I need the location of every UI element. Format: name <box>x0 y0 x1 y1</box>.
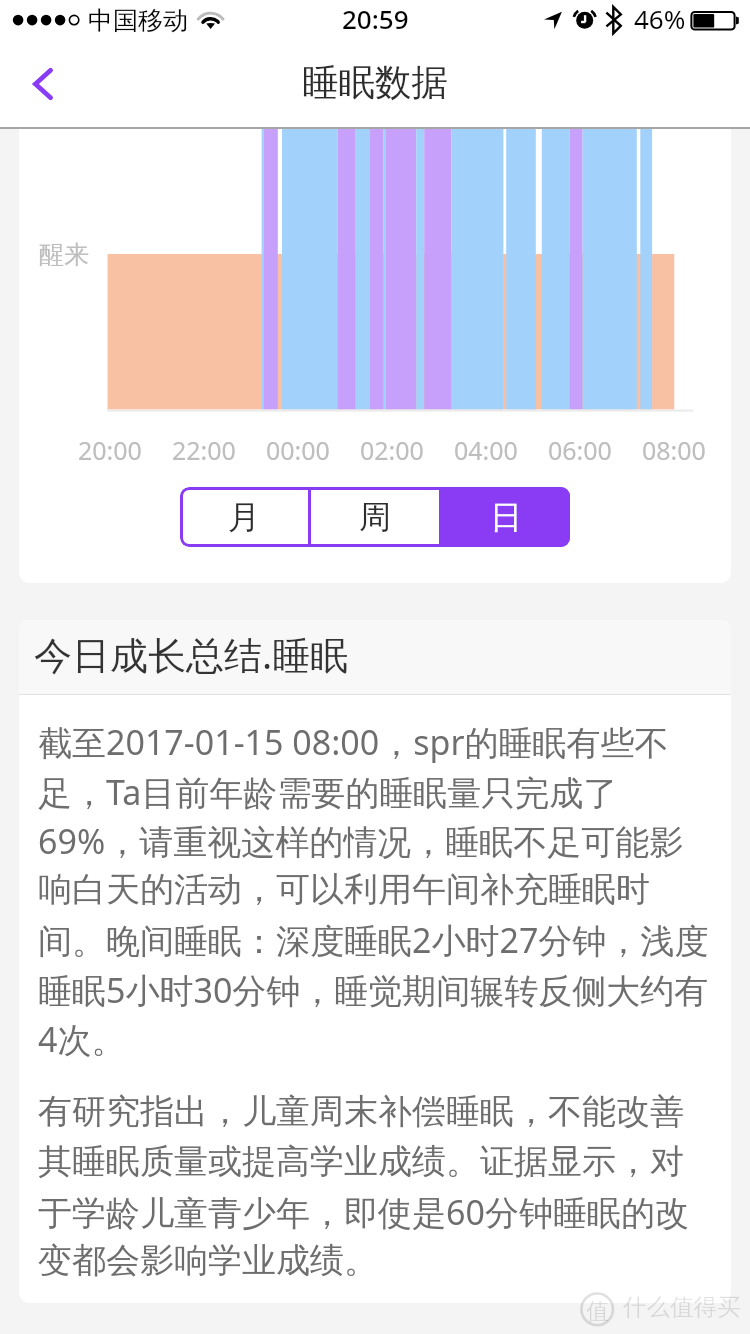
staticText: 响白天的活动，可以利用午间补充睡眠时 <box>38 868 650 911</box>
staticText: 69%，请重视这样的情况，睡眠不足可能影 <box>38 818 684 864</box>
staticText: 月 <box>228 497 260 537</box>
staticText: 今日成长总结.睡眠 <box>34 628 349 680</box>
staticText: 足，Ta目前年龄需要的睡眠量只完成了 <box>38 769 618 815</box>
staticText: 08:00 <box>642 433 706 467</box>
staticText: 值 <box>586 1297 609 1326</box>
staticText: 周 <box>359 497 391 537</box>
button[interactable]: 日 <box>442 487 570 547</box>
button[interactable]: 周 <box>311 487 439 547</box>
staticText: 醒来 <box>39 239 89 270</box>
staticText: 什么值得买 <box>623 1292 741 1322</box>
staticText: 于学龄儿童青少年，即使是60分钟睡眠的改 <box>38 1189 689 1235</box>
staticText: 截至2017-01-15 08:00，spr的睡眠有些不 <box>38 719 669 765</box>
staticText: 其睡眠质量或提高学业成绩。证据显示，对 <box>38 1140 684 1183</box>
staticText: 日 <box>490 497 522 537</box>
staticText: 变都会影响学业成绩。 <box>38 1239 378 1282</box>
staticText: 20:59 <box>342 1 409 36</box>
button[interactable]: Back <box>0 46 83 125</box>
button[interactable]: 月 <box>180 487 308 547</box>
staticText: 20:00 <box>78 433 142 467</box>
staticText: 睡眠数据 <box>302 60 448 106</box>
staticText: 02:00 <box>360 433 424 467</box>
staticText: 中国移动 <box>88 5 188 36</box>
staticText: 00:00 <box>266 433 330 467</box>
staticText: 22:00 <box>172 433 236 467</box>
staticText: 46% <box>634 1 686 36</box>
staticText: 4次。 <box>38 1016 126 1062</box>
staticText: 睡眠5小时30分钟，睡觉期间辗转反侧大约有 <box>38 967 709 1013</box>
staticText: 06:00 <box>548 433 612 467</box>
staticText: 间。晚间睡眠：深度睡眠2小时27分钟，浅度 <box>38 917 709 963</box>
staticText: 有研究指出，儿童周末补偿睡眠，不能改善 <box>38 1090 684 1133</box>
staticText: 04:00 <box>454 433 518 467</box>
